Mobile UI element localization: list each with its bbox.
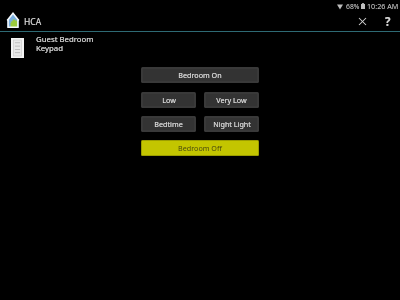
staticText: 68% — [346, 2, 360, 11]
button[interactable]: Bedtime — [141, 116, 196, 132]
staticText: Very Low — [216, 95, 247, 105]
staticText: Bedroom Off — [178, 143, 222, 153]
staticText: Guest Bedroom — [36, 34, 94, 45]
staticText: Night Light — [213, 119, 251, 129]
staticText: ? — [385, 14, 391, 30]
button[interactable]: Low — [141, 92, 196, 108]
button[interactable]: Very Low — [204, 92, 259, 108]
button[interactable]: Night Light — [204, 116, 259, 132]
staticText: Bedroom On — [178, 70, 222, 80]
button[interactable]: Close — [349, 12, 375, 30]
button[interactable]: Help — [375, 13, 400, 31]
button[interactable]: Bedroom On — [141, 67, 259, 83]
staticText: 10:26 AM — [367, 1, 399, 11]
staticText: HCA — [24, 16, 42, 28]
staticText: Bedtime — [154, 119, 183, 129]
button[interactable]: Bedroom Off — [141, 140, 259, 156]
staticText: Keypad — [36, 43, 64, 54]
staticText: Low — [162, 95, 176, 105]
